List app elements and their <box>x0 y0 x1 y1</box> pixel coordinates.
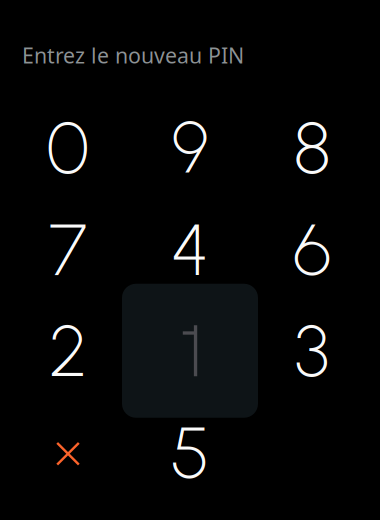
staticText: 2 <box>49 307 87 394</box>
staticText: 6 <box>293 206 331 292</box>
staticText: 5 <box>170 409 209 495</box>
button[interactable]: 8 <box>251 97 373 198</box>
staticText: 4 <box>171 206 209 292</box>
button[interactable]: 7 <box>7 198 129 300</box>
button[interactable]: 6 <box>251 198 373 300</box>
staticText: 9 <box>171 104 208 191</box>
staticText: 7 <box>49 206 87 292</box>
staticText: 0 <box>46 104 89 191</box>
staticText: 3 <box>294 307 329 394</box>
button[interactable] <box>129 300 251 401</box>
staticText: Entrez le nouveau PIN <box>22 41 244 69</box>
button[interactable]: 4 <box>129 198 251 300</box>
button[interactable]: 9 <box>129 97 251 198</box>
button[interactable]: 0 <box>7 97 129 198</box>
button[interactable]: 5 <box>129 401 251 503</box>
button[interactable]: 2 <box>7 300 129 401</box>
staticText: 8 <box>293 104 330 191</box>
button[interactable]: Annuler <box>7 401 129 503</box>
button[interactable]: 3 <box>251 300 373 401</box>
